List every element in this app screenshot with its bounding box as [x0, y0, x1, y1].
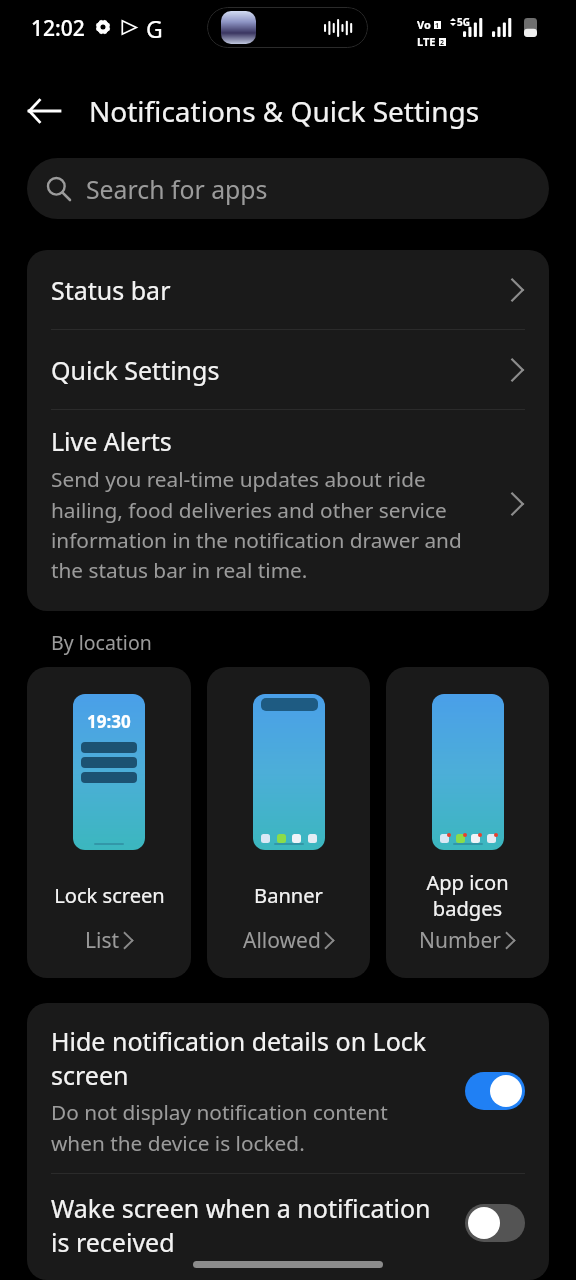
staticText: Vo: [417, 17, 431, 32]
staticText: 19:30: [87, 710, 131, 733]
staticText: List: [85, 926, 120, 955]
staticText: Banner: [254, 882, 323, 909]
button[interactable]: Wake screen when a notification is recei…: [27, 1174, 549, 1280]
staticText: Allowed: [243, 926, 321, 955]
button[interactable]: Banner: [207, 667, 370, 978]
button[interactable]: Search for apps: [27, 158, 549, 219]
button[interactable]: Back: [16, 83, 72, 139]
button[interactable]: 19:30: [27, 667, 191, 978]
button[interactable]: Status bar: [27, 250, 549, 329]
staticText: Search for apps: [86, 172, 268, 206]
button[interactable]: App icon badges: [386, 667, 549, 978]
staticText: Live Alerts: [51, 424, 172, 458]
button[interactable]: Live Alerts: [27, 410, 549, 611]
staticText: App icon badges: [392, 869, 543, 922]
staticText: 5G: [457, 15, 470, 29]
button[interactable]: Hide notification details on Lock screen: [27, 1003, 549, 1173]
staticText: 2: [440, 38, 445, 46]
staticText: By location: [51, 629, 152, 656]
button[interactable]: Quick Settings: [27, 330, 549, 409]
staticText: LTE: [417, 34, 436, 49]
staticText: 1: [435, 21, 440, 29]
staticText: Wake screen when a notification is recei…: [51, 1191, 443, 1254]
staticText: Quick Settings: [51, 353, 510, 387]
staticText: Do not display notification content when…: [51, 1098, 443, 1157]
staticText: Notifications & Quick Settings: [89, 92, 480, 130]
staticText: Status bar: [51, 273, 510, 307]
staticText: 12:02: [31, 14, 85, 43]
staticText: Hide notification details on Lock screen: [51, 1024, 443, 1092]
staticText: Number: [419, 926, 502, 955]
staticText: G: [146, 13, 163, 44]
staticText: Lock screen: [54, 882, 165, 909]
staticText: Send you real-time updates about ride ha…: [51, 465, 463, 584]
